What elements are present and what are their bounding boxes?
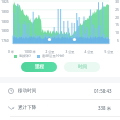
staticText: 2 公里	[45, 50, 55, 54]
staticText: 里程	[35, 64, 44, 70]
button[interactable]: Total descent	[0, 100, 120, 116]
other: Total descent	[8, 105, 14, 111]
staticText: 1000 米	[24, 50, 36, 54]
staticText: 4 公里	[84, 50, 94, 54]
staticText: 累计下降	[18, 105, 37, 111]
button[interactable]: Moving time	[0, 83, 120, 99]
staticText: 25	[115, 8, 119, 12]
staticText: 5 公里	[104, 50, 114, 54]
staticText: 1800	[1, 10, 9, 14]
staticText: 20	[115, 16, 119, 20]
staticText: 10	[115, 31, 119, 35]
staticText: 移动时间	[18, 88, 37, 94]
staticText: 0 米	[8, 50, 14, 54]
staticText: 338 米	[98, 105, 112, 111]
staticText: 15	[115, 23, 119, 27]
button[interactable]: 里程	[21, 62, 57, 72]
staticText: 1800	[1, 20, 9, 24]
other: Moving time	[8, 88, 14, 94]
staticText: 1825	[1, 0, 9, 4]
staticText: 1800	[1, 29, 9, 33]
staticText: 速度(公里/小时)	[42, 54, 65, 58]
staticText: 30	[115, 0, 119, 4]
button[interactable]: 时间	[64, 62, 100, 72]
staticText: 海拔(米)	[19, 54, 31, 58]
staticText: 时间	[78, 64, 87, 70]
staticText: 3 公里	[65, 50, 75, 54]
staticText: 01:58:43	[94, 88, 112, 94]
staticText: 5	[117, 39, 119, 43]
staticText: 1760	[1, 39, 9, 43]
